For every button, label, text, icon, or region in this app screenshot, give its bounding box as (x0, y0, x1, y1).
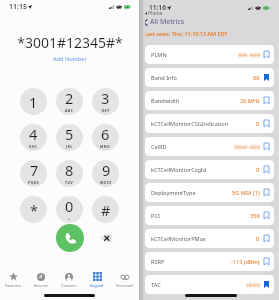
staticText: 5G NSA (1) (232, 189, 260, 197)
staticText: PCI (151, 212, 160, 220)
staticText: 7 (30, 160, 39, 180)
button[interactable]: 8 (56, 160, 83, 187)
staticText: # (101, 200, 111, 220)
staticText: Voicemail (116, 283, 134, 288)
staticText: Phone (148, 10, 163, 17)
staticText: 8 (65, 160, 74, 180)
staticText: 66 (253, 74, 260, 82)
staticText: 6 (101, 124, 110, 144)
staticText: ABC (65, 108, 74, 113)
staticText: All Metrics (150, 17, 185, 27)
staticText: 5 (65, 124, 74, 144)
button[interactable]: Recents (27, 272, 55, 288)
button[interactable]: 2 (56, 88, 83, 115)
staticText: -115 (dBm) (231, 258, 260, 266)
staticText: Last seen: Thu, 11:15:13 AM EDT (144, 30, 228, 37)
button[interactable]: 7 (20, 160, 47, 187)
button[interactable]: DeploymentType (145, 183, 274, 202)
staticText: TAC (151, 281, 161, 289)
staticText: Contacts (61, 283, 77, 288)
staticText: kCTCellMonitorPMax (151, 235, 206, 243)
button[interactable]: Band Info (145, 68, 274, 87)
staticText: GHI (29, 144, 38, 149)
staticText: 0 (65, 196, 74, 216)
staticText: * (30, 200, 38, 220)
button[interactable]: Call (56, 224, 84, 252)
staticText: 20 MHz (240, 97, 260, 105)
staticText: 1 (29, 92, 38, 112)
button[interactable]: Delete (96, 231, 116, 245)
staticText: DeploymentType (151, 189, 196, 197)
staticText: Band Info (151, 74, 177, 82)
button[interactable]: Back to Phone (145, 10, 163, 17)
button[interactable]: # (92, 196, 119, 223)
staticText: JKL (66, 144, 73, 149)
button[interactable]: PCI (145, 206, 274, 225)
staticText: 9 (102, 160, 111, 180)
button[interactable]: CellID (145, 137, 274, 156)
staticText: Recents (34, 283, 49, 288)
staticText: 11:15 (9, 2, 27, 12)
button[interactable]: Contacts (55, 272, 83, 288)
staticText: kCTCellMonitorCsgId (151, 166, 207, 174)
staticText: PLMN (151, 51, 167, 59)
staticText: Bandwidth (151, 97, 180, 105)
button[interactable]: PLMN (145, 45, 274, 64)
button[interactable]: Voicemail (111, 272, 139, 288)
button[interactable]: Bandwidth (145, 91, 274, 110)
staticText: 0 (256, 166, 260, 174)
staticText: DEF (102, 108, 110, 113)
button[interactable]: Keypad (83, 272, 111, 288)
staticText: Favorites (5, 283, 22, 288)
button[interactable]: 4 (20, 124, 47, 151)
button[interactable]: All Metrics (143, 17, 185, 27)
staticText: 0 (256, 120, 260, 128)
button[interactable]: 5 (56, 124, 83, 151)
staticText: 2 (65, 88, 74, 108)
button[interactable]: 0 (56, 196, 83, 223)
staticText: 4 (29, 124, 38, 144)
staticText: *3001#12345#* (17, 33, 123, 52)
staticText: Add Number (53, 55, 87, 63)
staticText: MNO (100, 144, 111, 149)
staticText: 11:16 (149, 3, 166, 12)
button[interactable]: Add Number (49, 54, 91, 64)
button[interactable]: kCTCellMonitorCSGIndication (145, 114, 274, 133)
button[interactable]: 9 (92, 160, 119, 187)
button[interactable]: * (20, 196, 47, 223)
staticText: WXYZ (100, 180, 112, 185)
button[interactable]: kCTCellMonitorCsgId (145, 160, 274, 179)
staticText: 3 (101, 88, 110, 108)
staticText: 350 (250, 212, 260, 220)
staticText: Keypad (90, 283, 104, 288)
button[interactable]: 1 (20, 88, 47, 115)
staticText: RSRP (151, 258, 165, 266)
button[interactable]: 6 (92, 124, 119, 151)
staticText: + (68, 216, 71, 221)
staticText: TUV (65, 180, 74, 185)
button[interactable]: TAC (145, 275, 274, 294)
button[interactable]: RSRP (145, 252, 274, 271)
button[interactable]: kCTCellMonitorPMax (145, 229, 274, 248)
staticText: CellID (151, 143, 167, 151)
staticText: kCTCellMonitorCSGIndication (151, 120, 229, 128)
button[interactable]: Favorites (0, 272, 27, 288)
staticText: PQRS (28, 180, 40, 185)
staticText: 0 (256, 235, 260, 243)
button[interactable]: 3 (92, 88, 119, 115)
